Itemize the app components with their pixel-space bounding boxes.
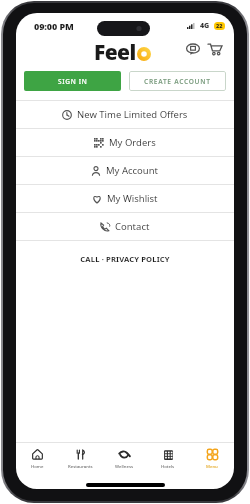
button[interactable]: My Orders [16, 129, 234, 156]
staticText: Contact [115, 220, 150, 233]
button[interactable]: Home [16, 449, 59, 469]
button[interactable]: SIGN IN [24, 71, 121, 91]
staticText: SIGN IN [58, 77, 88, 86]
button[interactable]: Hotels [146, 449, 190, 469]
staticText: Home [31, 463, 44, 469]
button[interactable]: My Account [16, 157, 234, 184]
button[interactable]: Cart [206, 40, 224, 58]
staticText: My Orders [109, 136, 156, 149]
staticText: CALL · PRIVACY POLICY [16, 254, 234, 264]
staticText: Menu [206, 463, 218, 469]
staticText: Feel [94, 38, 136, 67]
staticText: Wellness [115, 463, 134, 469]
staticText: 09:00 PM [34, 20, 74, 32]
staticText: 4G [200, 21, 210, 31]
button[interactable]: Messages [184, 40, 202, 58]
button[interactable]: Contact [16, 213, 234, 240]
button[interactable]: Menu [190, 449, 234, 469]
button[interactable]: New Time Limited Offers [16, 101, 234, 128]
staticText: 22 [216, 22, 223, 30]
button[interactable]: Restaurants [59, 449, 102, 469]
button[interactable]: CREATE ACCOUNT [129, 71, 226, 91]
staticText: My Wishlist [107, 192, 158, 205]
button[interactable]: Wellness [102, 449, 146, 469]
staticText: My Account [106, 164, 159, 177]
staticText: Restaurants [68, 463, 93, 469]
staticText: Hotels [161, 463, 175, 469]
button[interactable]: My Wishlist [16, 185, 234, 212]
staticText: New Time Limited Offers [77, 108, 188, 121]
staticText: CREATE ACCOUNT [144, 77, 211, 86]
